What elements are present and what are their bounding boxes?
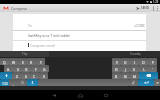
button[interactable]: Hide keyboard — [154, 79, 160, 86]
button[interactable]: Gmail — [3, 6, 9, 10]
staticText: O — [142, 60, 145, 64]
button[interactable]: Space — [38, 79, 129, 86]
staticText: V — [43, 74, 45, 78]
button[interactable]: Enter — [138, 79, 154, 86]
button[interactable]: Comma — [9, 79, 18, 86]
button[interactable]: Shift — [0, 72, 12, 79]
button[interactable]: A — [4, 65, 13, 72]
button[interactable]: ' — [148, 65, 157, 72]
staticText: C — [33, 74, 36, 78]
button[interactable]: SwiftKey on a 7 inch tablet — [13, 31, 146, 40]
staticText: I — [134, 60, 136, 64]
button[interactable]: G — [40, 65, 49, 72]
button[interactable]: Y — [112, 58, 121, 65]
button[interactable]: T — [36, 58, 45, 65]
staticText: L — [143, 67, 145, 71]
button[interactable]: Emoji — [18, 79, 27, 86]
button[interactable]: Note — [129, 79, 138, 86]
staticText: X — [25, 74, 27, 78]
button[interactable]: Play — [0, 51, 49, 57]
button[interactable]: Home — [67, 90, 93, 100]
button[interactable]: L — [139, 65, 148, 72]
button[interactable]: Tuesday — [110, 51, 160, 57]
button[interactable]: S — [13, 65, 22, 72]
button[interactable]: K — [130, 65, 139, 72]
staticText: Z — [16, 74, 18, 78]
button[interactable]: I — [130, 58, 139, 65]
button[interactable]: E — [18, 58, 27, 65]
staticText: P — [152, 60, 154, 64]
staticText: H — [115, 67, 118, 71]
staticText: , — [13, 81, 14, 85]
button[interactable]: O — [139, 58, 148, 65]
button[interactable]: B — [112, 72, 121, 79]
staticText: W — [12, 60, 16, 64]
staticText: SEND — [141, 6, 149, 10]
button[interactable]: U — [121, 58, 130, 65]
button[interactable]: Backspace — [139, 72, 158, 79]
button[interactable]: F — [31, 65, 40, 72]
button[interactable]: Back — [41, 90, 67, 100]
staticText: Y — [116, 60, 118, 64]
button[interactable]: +CC/BCC — [133, 21, 146, 30]
button[interactable]: D — [22, 65, 31, 72]
staticText: D — [25, 67, 28, 71]
staticText: B — [115, 74, 118, 78]
staticText: E — [22, 60, 24, 64]
button[interactable]: Z — [12, 72, 21, 79]
button[interactable]: 123 — [0, 79, 9, 86]
staticText: +CC/BCC — [134, 24, 145, 28]
button[interactable]: X — [21, 72, 30, 79]
staticText: M — [133, 74, 136, 78]
staticText: K — [133, 67, 136, 71]
button[interactable]: Recent apps — [93, 90, 119, 100]
button[interactable]: P — [148, 58, 157, 65]
staticText: 1:29 — [153, 0, 159, 4]
button[interactable]: H — [112, 65, 121, 72]
staticText: Compose — [11, 6, 27, 11]
button[interactable]: More options — [154, 4, 160, 12]
staticText: SwiftKey on a 7 inch tablet — [28, 33, 70, 38]
staticText: Compose email — [30, 43, 55, 48]
staticText: R — [30, 60, 33, 64]
button[interactable]: C — [30, 72, 39, 79]
button[interactable]: M — [130, 72, 139, 79]
staticText: 123 — [2, 81, 8, 85]
button[interactable]: N — [121, 72, 130, 79]
staticText: G — [43, 67, 46, 71]
button[interactable]: V — [39, 72, 48, 79]
staticText: J — [125, 67, 126, 71]
staticText: Play — [22, 52, 28, 56]
button[interactable]: Compose email — [13, 41, 146, 51]
button[interactable]: R — [27, 58, 36, 65]
staticText: U — [124, 60, 127, 64]
button[interactable]: SEND — [136, 4, 149, 12]
staticText: Tuesday — [130, 52, 141, 56]
staticText: T — [40, 60, 42, 64]
button[interactable]: J — [121, 65, 130, 72]
staticText: F — [35, 67, 37, 71]
staticText: Q — [3, 60, 6, 64]
staticText: ' — [152, 67, 153, 71]
button[interactable]: To — [13, 21, 146, 30]
staticText: A — [7, 67, 10, 71]
button[interactable]: Voice input — [27, 79, 38, 86]
button[interactable]: Q — [0, 58, 9, 65]
button[interactable]: W — [9, 58, 18, 65]
staticText: N — [124, 74, 127, 78]
staticText: S — [17, 67, 19, 71]
staticText: To — [28, 23, 32, 28]
